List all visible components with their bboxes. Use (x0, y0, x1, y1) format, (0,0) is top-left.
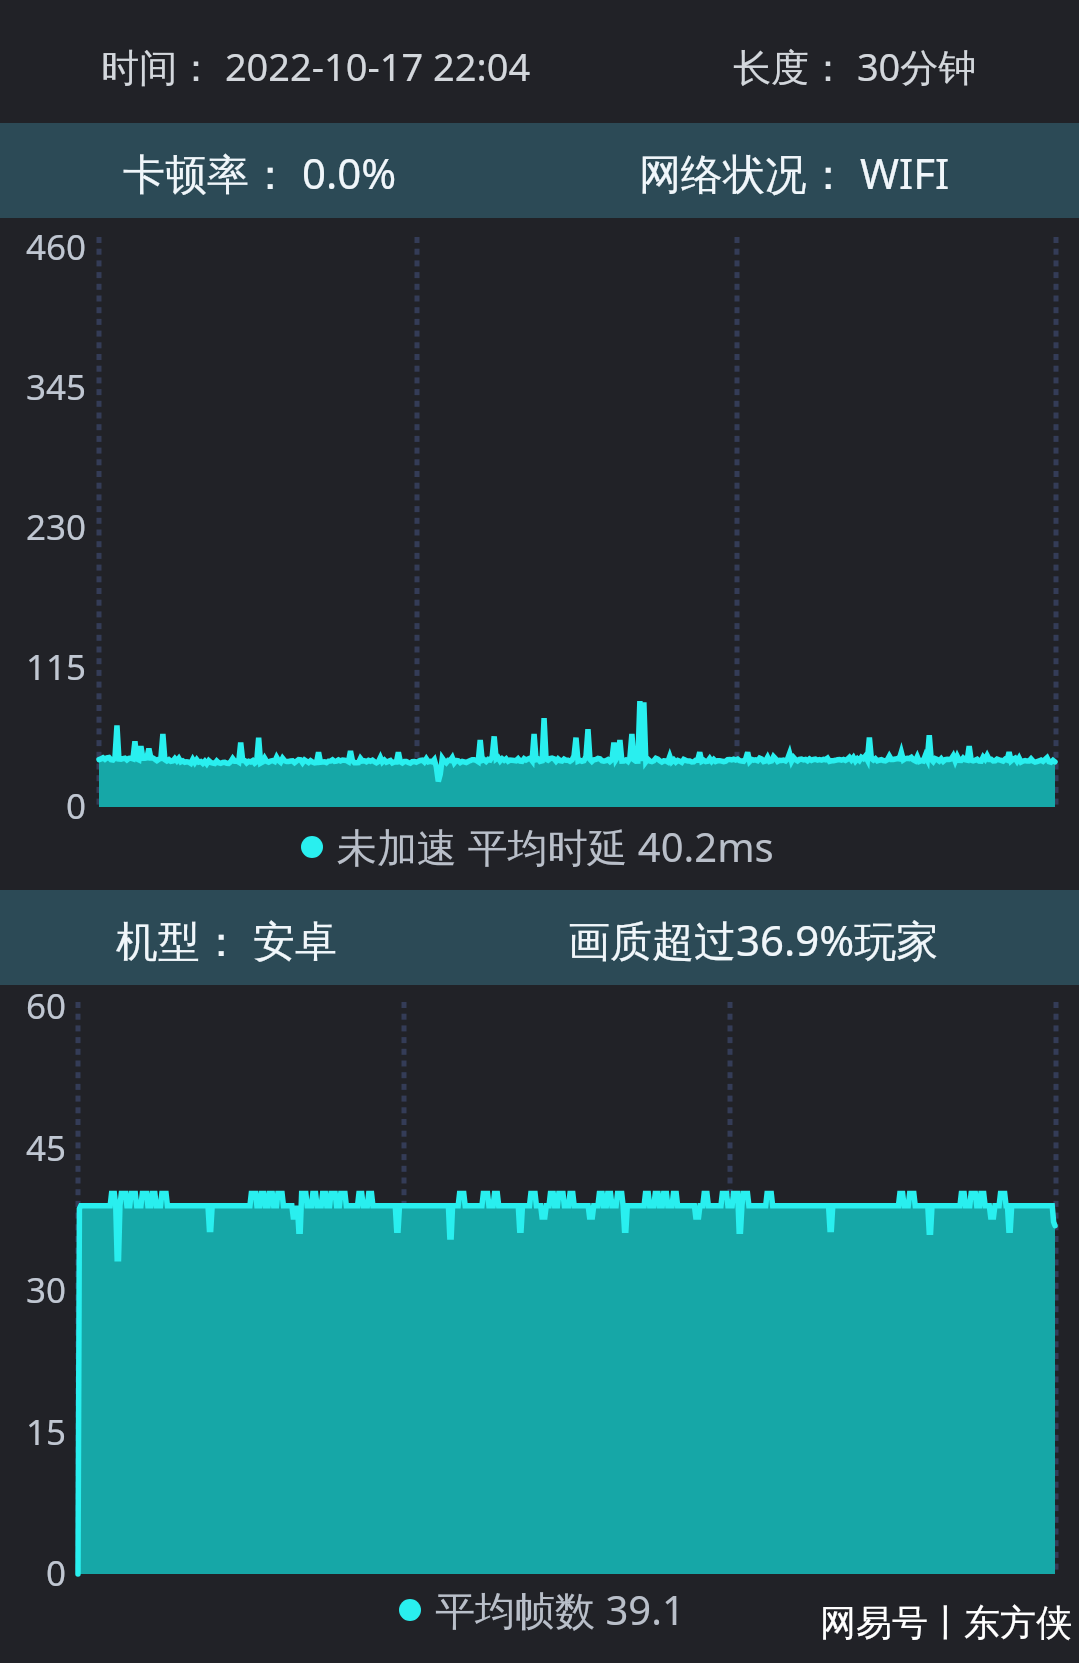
staticText: 60 (26, 982, 67, 1030)
staticText: 0 (46, 1549, 67, 1597)
staticText: 网易号丨东方侠 (820, 1600, 1072, 1645)
staticText: 未加速 平均时延 40.2ms (337, 819, 774, 874)
staticText: 卡顿率： 0.0% (123, 144, 397, 201)
button[interactable]: 卡顿率： 0.0% (0, 123, 1079, 218)
button[interactable]: 网易号丨东方侠 (820, 1600, 1072, 1645)
staticText: 30 (26, 1266, 67, 1314)
staticText: 15 (26, 1408, 67, 1456)
staticText: 115 (26, 643, 87, 691)
button[interactable]: 时间： 2022-10-17 22:04 (0, 0, 1079, 123)
staticText: 0 (66, 782, 87, 830)
staticText: 长度： 30分钟 (733, 40, 977, 92)
button[interactable]: 机型： 安卓 (0, 890, 1079, 985)
staticText: 345 (26, 363, 87, 411)
staticText: 时间： 2022-10-17 22:04 (101, 40, 531, 92)
staticText: 网络状况： WIFI (639, 144, 950, 201)
staticText: 45 (26, 1124, 67, 1172)
staticText: 机型： 安卓 (116, 911, 337, 968)
staticText: 画质超过36.9%玩家 (568, 911, 939, 968)
staticText: 230 (26, 503, 87, 551)
staticText: 平均帧数 39.1 (435, 1582, 685, 1637)
staticText: 460 (26, 223, 87, 271)
